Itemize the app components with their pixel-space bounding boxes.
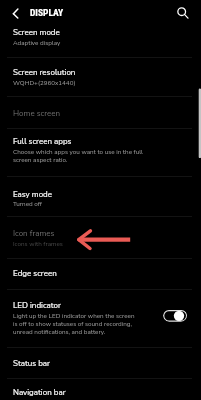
staticText: Home screen (13, 108, 61, 119)
staticText: Icons with frames (13, 240, 63, 249)
staticText: Turned off (13, 200, 42, 209)
button[interactable] (0, 128, 201, 176)
staticText: LED indicator (13, 300, 61, 311)
staticText: Status bar (13, 358, 50, 369)
button[interactable]: LED indicator toggle (163, 309, 187, 322)
staticText: Choose which apps you want to use in the… (13, 148, 143, 164)
button[interactable] (0, 21, 201, 57)
button[interactable] (0, 217, 201, 257)
button[interactable]: Back (3, 1, 27, 25)
button[interactable] (0, 58, 201, 95)
button[interactable] (0, 347, 201, 378)
staticText: Edge screen (13, 268, 57, 279)
button[interactable] (0, 96, 201, 127)
button[interactable] (0, 379, 201, 400)
staticText: Adaptive display (13, 39, 61, 48)
staticText: WQHD+(2960x1440) (13, 79, 76, 88)
staticText: DISPLAY (30, 7, 64, 18)
staticText: Easy mode (13, 189, 52, 200)
button[interactable] (0, 258, 201, 289)
staticText: Full screen apps (13, 136, 72, 147)
staticText: Light up the LED indicator when the scre… (13, 312, 135, 336)
button[interactable] (0, 177, 201, 216)
button[interactable]: Search (173, 0, 193, 20)
staticText: Navigation bar (13, 387, 66, 398)
staticText: Screen mode (13, 27, 60, 38)
staticText: Screen resolution (13, 67, 76, 78)
staticText: Icon frames (13, 228, 55, 239)
button[interactable] (0, 290, 201, 346)
